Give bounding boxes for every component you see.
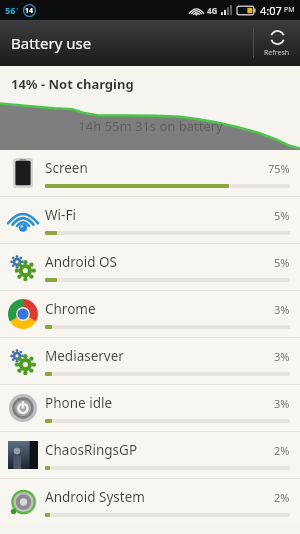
staticText: 4G xyxy=(207,5,218,16)
staticText: 2% xyxy=(274,490,290,505)
staticText: 3% xyxy=(274,349,290,364)
staticText: Screen xyxy=(45,159,268,177)
button[interactable]: ChaosRingsGP xyxy=(0,432,300,478)
button[interactable]: Chrome xyxy=(0,291,300,337)
staticText: 2% xyxy=(274,443,290,458)
staticText: 3% xyxy=(274,396,290,411)
button[interactable]: Android OS xyxy=(0,244,300,290)
button[interactable]: Android System xyxy=(0,479,300,525)
button[interactable]: Screen xyxy=(0,150,300,196)
staticText: Phone idle xyxy=(45,394,274,412)
staticText: Wi-Fi xyxy=(45,206,274,224)
staticText: 75% xyxy=(268,161,290,176)
staticText: 14h 55m 31s on battery xyxy=(78,117,223,135)
staticText: PM xyxy=(284,5,295,15)
button[interactable]: Mediaserver xyxy=(0,338,300,384)
button[interactable]: Phone idle xyxy=(0,385,300,431)
staticText: ° xyxy=(16,6,19,14)
staticText: 3% xyxy=(274,302,290,317)
staticText: 56 xyxy=(5,4,16,16)
staticText: Chrome xyxy=(45,300,274,318)
staticText: 5% xyxy=(274,208,290,223)
button[interactable]: Wi-Fi xyxy=(0,197,300,243)
staticText: ChaosRingsGP xyxy=(45,441,274,459)
staticText: Battery use xyxy=(11,33,253,53)
staticText: Android OS xyxy=(45,253,274,271)
staticText: 5% xyxy=(274,255,290,270)
button[interactable]: Refresh xyxy=(254,20,300,66)
staticText: 14% - Not charging xyxy=(11,75,134,93)
staticText: Mediaserver xyxy=(45,347,274,365)
staticText: Refresh xyxy=(264,48,290,58)
staticText: 14 xyxy=(25,6,34,16)
staticText: 4:07 xyxy=(260,3,282,18)
staticText: Android System xyxy=(45,488,274,506)
